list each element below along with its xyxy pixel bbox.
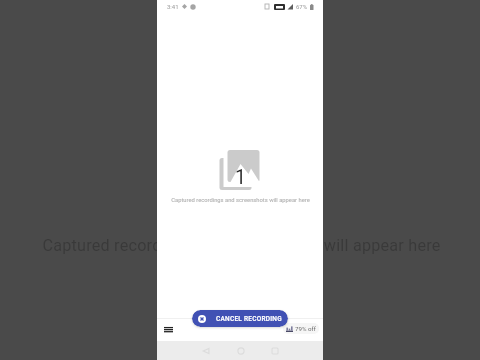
staticText: 1 <box>235 166 246 189</box>
staticText: Captured recordings and screenshots will… <box>171 197 310 204</box>
button[interactable]: 79% off <box>283 323 319 334</box>
button[interactable]: Back <box>197 341 215 360</box>
staticText: 67% <box>296 3 308 10</box>
button[interactable]: CANCEL RECORDING <box>192 310 288 327</box>
staticText: 79% off <box>295 325 316 332</box>
button[interactable]: Menu <box>161 322 176 337</box>
staticText: 3:41 <box>167 3 179 10</box>
staticText: CANCEL RECORDING <box>216 315 282 323</box>
staticText: Captured recordings and screenshots will… <box>42 236 441 255</box>
button[interactable]: Home <box>232 341 250 360</box>
